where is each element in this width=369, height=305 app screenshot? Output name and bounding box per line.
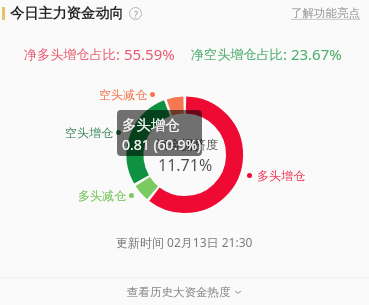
staticText: 多头增仓 (257, 168, 305, 183)
staticText: 多头增仓 (122, 116, 180, 134)
staticText: 空头增仓 (65, 125, 113, 140)
staticText: 净多头增仓占比 (24, 46, 116, 63)
staticText: ? (134, 8, 138, 20)
staticText: 查看历史大资金热度 (127, 285, 231, 299)
staticText: 空头减仓 (99, 87, 147, 102)
staticText: : 55.59% (116, 44, 175, 64)
button[interactable]: 了解功能亮点 (291, 6, 369, 20)
staticText: 0.81 (60.9%) (122, 135, 202, 154)
staticText: 资金拥挤度 (156, 137, 219, 153)
staticText: 11.71% (158, 154, 213, 176)
staticText: 今日主力资金动向 (10, 4, 124, 22)
staticText: 多头减仓 (78, 188, 126, 203)
button[interactable]: Help (129, 7, 142, 20)
staticText: 更新时间 02月13日 21:30 (116, 234, 253, 250)
button[interactable]: 查看历史大资金热度 (0, 278, 369, 305)
staticText: : 23.67% (283, 44, 342, 64)
staticText: 净空头增仓占比 (191, 46, 283, 63)
staticText: 了解功能亮点 (291, 6, 360, 20)
